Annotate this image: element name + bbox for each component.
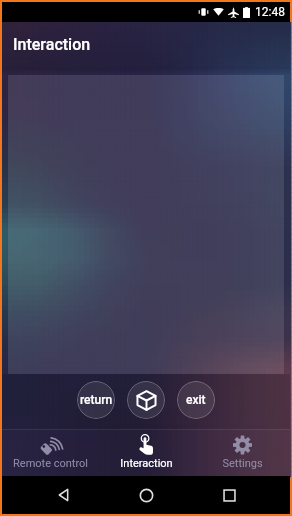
- button[interactable]: Interaction: [98, 429, 194, 476]
- staticText: exit: [186, 393, 206, 407]
- staticText: Interaction: [120, 457, 173, 470]
- button[interactable]: Back: [41, 476, 85, 514]
- staticText: 12:48: [255, 5, 285, 19]
- button[interactable]: return: [77, 381, 115, 419]
- staticText: Settings: [222, 457, 263, 470]
- button[interactable]: 3D model view: [127, 381, 165, 419]
- button[interactable]: Home: [124, 476, 168, 514]
- staticText: Interaction: [13, 35, 91, 54]
- staticText: return: [80, 393, 113, 407]
- button[interactable]: Recent apps: [207, 476, 251, 514]
- button[interactable]: Remote control: [2, 429, 98, 476]
- staticText: Remote control: [13, 457, 88, 470]
- button[interactable]: Settings: [194, 429, 290, 476]
- button[interactable]: exit: [177, 381, 215, 419]
